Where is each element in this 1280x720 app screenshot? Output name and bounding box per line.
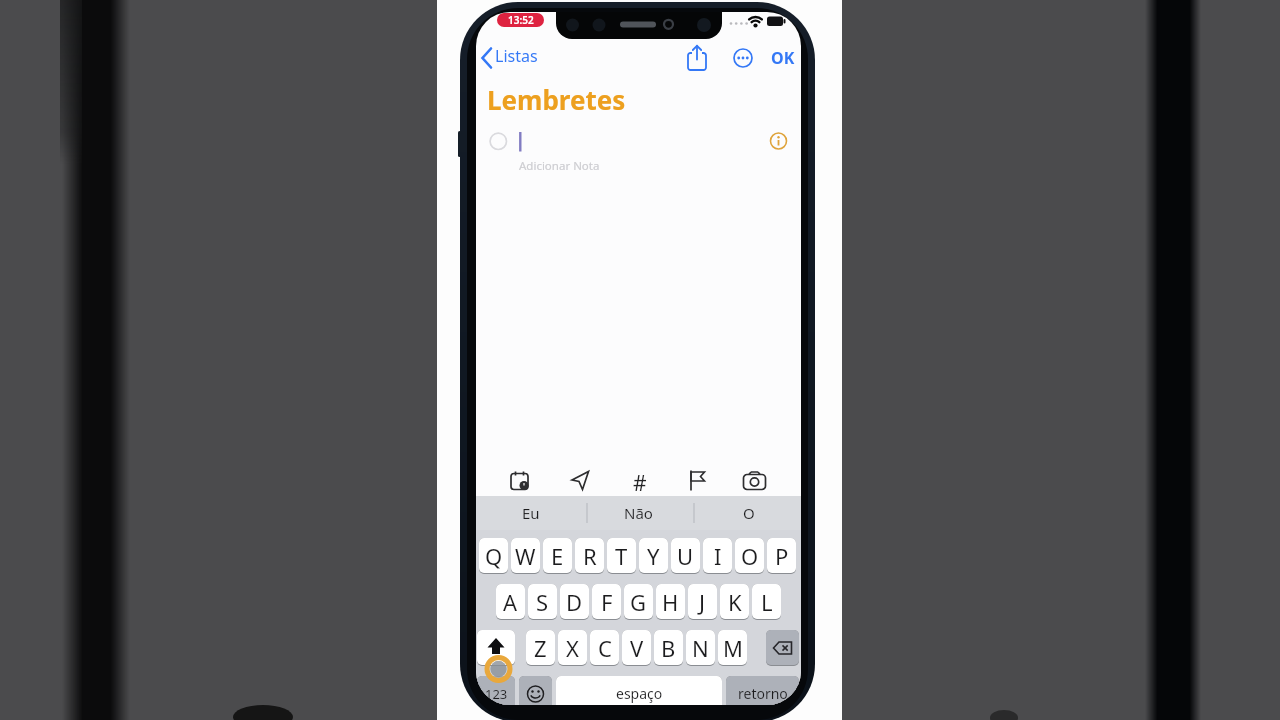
staticText: M: [723, 633, 743, 663]
staticText: P: [775, 541, 789, 571]
staticText: K: [728, 587, 742, 617]
button[interactable]: Q: [479, 538, 508, 574]
staticText: O: [741, 541, 759, 571]
button[interactable]: C: [590, 630, 619, 666]
button[interactable]: 123: [477, 676, 515, 705]
button[interactable]: [766, 630, 799, 666]
staticText: Listas: [495, 45, 538, 67]
button[interactable]: OK: [770, 45, 796, 71]
button[interactable]: N: [686, 630, 715, 666]
button[interactable]: J: [688, 584, 717, 620]
button[interactable]: [742, 470, 767, 493]
staticText: U: [677, 541, 694, 571]
button[interactable]: O: [704, 496, 794, 530]
staticText: B: [661, 633, 676, 663]
button[interactable]: M: [718, 630, 747, 666]
button[interactable]: O: [735, 538, 764, 574]
staticText: F: [601, 587, 613, 617]
staticText: H: [662, 587, 679, 617]
button[interactable]: [684, 44, 710, 72]
staticText: Eu: [522, 503, 540, 523]
staticText: Q: [485, 541, 503, 571]
button[interactable]: [686, 469, 709, 493]
button[interactable]: [569, 469, 592, 492]
button[interactable]: I: [703, 538, 732, 574]
staticText: Não: [624, 503, 653, 523]
staticText: Y: [647, 541, 660, 571]
staticText: C: [598, 633, 612, 663]
staticText: retorno: [738, 684, 788, 703]
button[interactable]: Eu: [486, 496, 576, 530]
button[interactable]: B: [654, 630, 683, 666]
button[interactable]: Listas: [495, 45, 545, 71]
staticText: espaço: [616, 684, 663, 703]
staticText: D: [566, 587, 583, 617]
staticText: OK: [771, 47, 795, 69]
button[interactable]: F: [592, 584, 621, 620]
button[interactable]: [519, 676, 552, 705]
staticText: L: [761, 587, 773, 617]
button[interactable]: A: [496, 584, 525, 620]
staticText: X: [566, 633, 579, 663]
button[interactable]: W: [511, 538, 540, 574]
staticText: Adicionar Nota: [519, 158, 600, 172]
button[interactable]: retorno: [726, 676, 799, 705]
button[interactable]: [733, 48, 753, 68]
button[interactable]: V: [622, 630, 651, 666]
staticText: O: [743, 503, 755, 523]
button[interactable]: G: [624, 584, 653, 620]
button[interactable]: S: [528, 584, 557, 620]
staticText: G: [630, 587, 647, 617]
staticText: N: [692, 633, 709, 663]
button[interactable]: E: [543, 538, 572, 574]
button[interactable]: U: [671, 538, 700, 574]
staticText: T: [615, 541, 628, 571]
button[interactable]: K: [720, 584, 749, 620]
button[interactable]: D: [560, 584, 589, 620]
staticText: S: [536, 587, 549, 617]
button[interactable]: 13:52: [497, 13, 544, 27]
button[interactable]: espaço: [556, 676, 722, 705]
button[interactable]: R: [575, 538, 604, 574]
staticText: I: [714, 541, 722, 571]
staticText: Z: [534, 633, 547, 663]
button[interactable]: L: [752, 584, 781, 620]
staticText: A: [503, 587, 518, 617]
button[interactable]: Z: [526, 630, 555, 666]
button[interactable]: P: [767, 538, 796, 574]
button[interactable]: Y: [639, 538, 668, 574]
staticText: 13:52: [508, 13, 534, 27]
staticText: #: [633, 469, 647, 493]
button[interactable]: T: [607, 538, 636, 574]
staticText: R: [583, 541, 597, 571]
staticText: 123: [485, 685, 508, 703]
button[interactable]: H: [656, 584, 685, 620]
button[interactable]: [478, 45, 538, 71]
staticText: E: [551, 541, 564, 571]
staticText: W: [515, 541, 536, 571]
staticText: V: [630, 633, 644, 663]
button[interactable]: X: [558, 630, 587, 666]
button[interactable]: Não: [593, 496, 683, 530]
button[interactable]: [509, 470, 532, 493]
button[interactable]: #: [628, 469, 651, 493]
staticText: Lembretes: [487, 82, 626, 114]
staticText: J: [699, 587, 706, 617]
button[interactable]: [477, 630, 515, 666]
